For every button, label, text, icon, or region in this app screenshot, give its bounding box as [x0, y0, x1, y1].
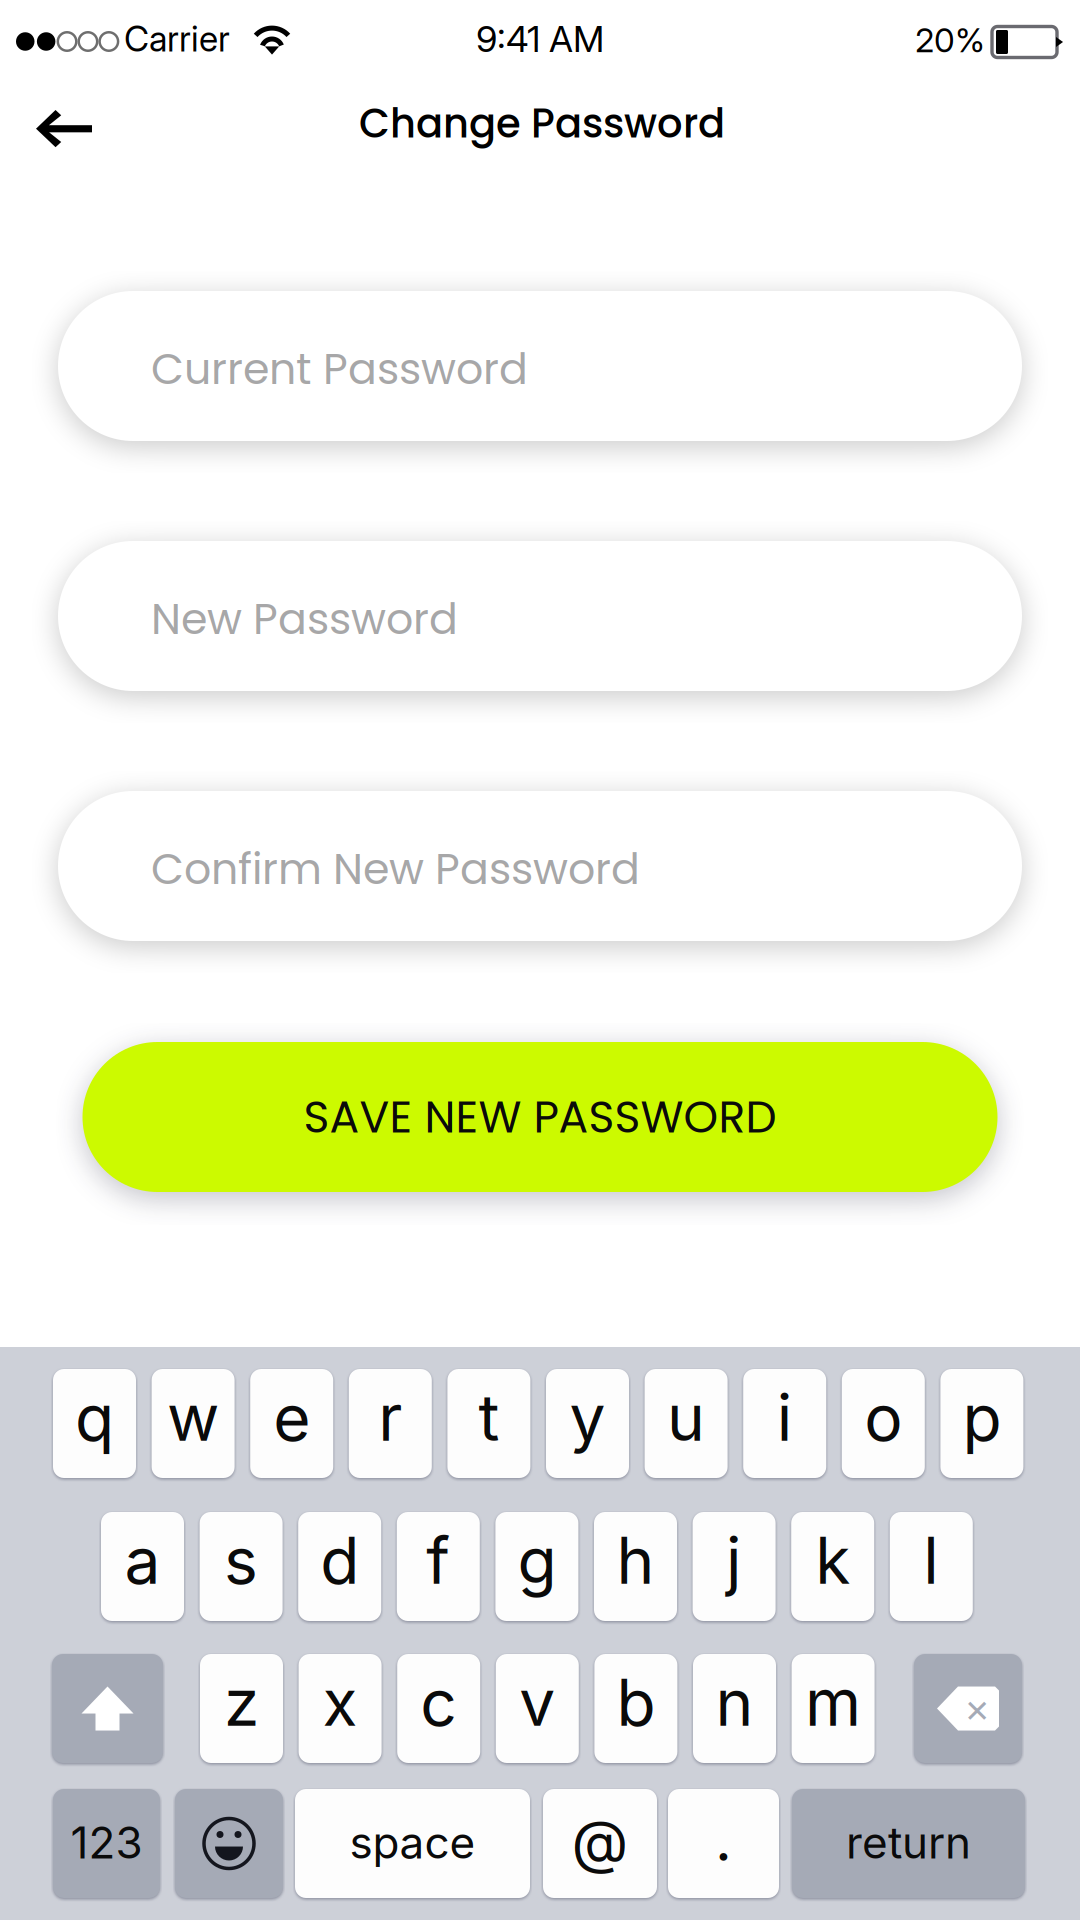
- button[interactable]: z: [200, 1654, 283, 1763]
- staticText: l: [923, 1522, 939, 1599]
- button[interactable]: u: [645, 1369, 728, 1478]
- button[interactable]: b: [594, 1654, 677, 1763]
- staticText: New Password: [151, 589, 458, 649]
- button[interactable]: f: [397, 1512, 480, 1621]
- staticText: r: [378, 1379, 402, 1456]
- button[interactable]: Confirm New Password: [58, 791, 1022, 941]
- staticText: SAVE NEW PASSWORD: [303, 1086, 776, 1148]
- staticText: @: [571, 1806, 628, 1877]
- button[interactable]: Delete: [914, 1654, 1022, 1763]
- staticText: c: [420, 1664, 457, 1741]
- staticText: space: [349, 1816, 475, 1869]
- button[interactable]: .: [668, 1789, 779, 1898]
- staticText: s: [224, 1522, 258, 1599]
- staticText: k: [815, 1522, 850, 1599]
- staticText: w: [167, 1379, 219, 1456]
- button[interactable]: m: [792, 1654, 875, 1763]
- staticText: Confirm New Password: [151, 839, 640, 899]
- staticText: q: [75, 1379, 114, 1456]
- button[interactable]: e: [250, 1369, 333, 1478]
- staticText: return: [846, 1816, 971, 1869]
- staticText: t: [478, 1379, 499, 1456]
- button[interactable]: space: [295, 1789, 530, 1898]
- staticText: u: [667, 1379, 705, 1456]
- staticText: z: [224, 1664, 259, 1741]
- button[interactable]: return: [792, 1789, 1025, 1898]
- staticText: v: [519, 1664, 555, 1741]
- staticText: p: [962, 1379, 1001, 1456]
- staticText: m: [805, 1664, 861, 1741]
- staticText: .: [715, 1804, 732, 1875]
- button[interactable]: p: [940, 1369, 1023, 1478]
- button[interactable]: y: [546, 1369, 629, 1478]
- staticText: j: [726, 1522, 742, 1599]
- staticText: 9:41 AM: [476, 17, 604, 61]
- staticText: x: [323, 1664, 358, 1741]
- button[interactable]: s: [200, 1512, 283, 1621]
- button[interactable]: Current Password: [58, 291, 1022, 441]
- button[interactable]: 123: [53, 1789, 160, 1898]
- button[interactable]: r: [349, 1369, 432, 1478]
- staticText: g: [517, 1522, 556, 1599]
- button[interactable]: d: [298, 1512, 381, 1621]
- button[interactable]: w: [152, 1369, 235, 1478]
- staticText: b: [616, 1664, 655, 1741]
- staticText: h: [616, 1522, 654, 1599]
- staticText: 123: [70, 1816, 142, 1869]
- staticText: o: [864, 1379, 902, 1456]
- button[interactable]: t: [447, 1369, 530, 1478]
- button[interactable]: n: [693, 1654, 776, 1763]
- staticText: Change Password: [359, 95, 725, 151]
- button[interactable]: a: [101, 1512, 184, 1621]
- button[interactable]: o: [842, 1369, 925, 1478]
- staticText: ×: [964, 1683, 989, 1732]
- staticText: y: [569, 1379, 605, 1456]
- button[interactable]: j: [693, 1512, 776, 1621]
- button[interactable]: v: [496, 1654, 579, 1763]
- button[interactable]: c: [397, 1654, 480, 1763]
- staticText: d: [320, 1522, 359, 1599]
- staticText: n: [715, 1664, 753, 1741]
- button[interactable]: SAVE NEW PASSWORD: [82, 1042, 997, 1192]
- button[interactable]: k: [791, 1512, 874, 1621]
- staticText: f: [426, 1522, 450, 1599]
- button[interactable]: x: [299, 1654, 382, 1763]
- button[interactable]: Back: [9, 78, 119, 178]
- button[interactable]: h: [594, 1512, 677, 1621]
- staticText: i: [777, 1379, 793, 1456]
- button[interactable]: Emoji: [175, 1789, 283, 1898]
- button[interactable]: g: [495, 1512, 578, 1621]
- staticText: a: [124, 1522, 160, 1599]
- button[interactable]: @: [543, 1789, 657, 1898]
- staticText: Carrier: [124, 18, 230, 60]
- button[interactable]: l: [890, 1512, 973, 1621]
- button[interactable]: Shift: [52, 1654, 163, 1763]
- button[interactable]: q: [53, 1369, 136, 1478]
- staticText: Current Password: [151, 339, 528, 399]
- button[interactable]: New Password: [58, 541, 1022, 691]
- staticText: 20%: [915, 20, 985, 60]
- staticText: e: [273, 1379, 310, 1456]
- button[interactable]: i: [743, 1369, 826, 1478]
